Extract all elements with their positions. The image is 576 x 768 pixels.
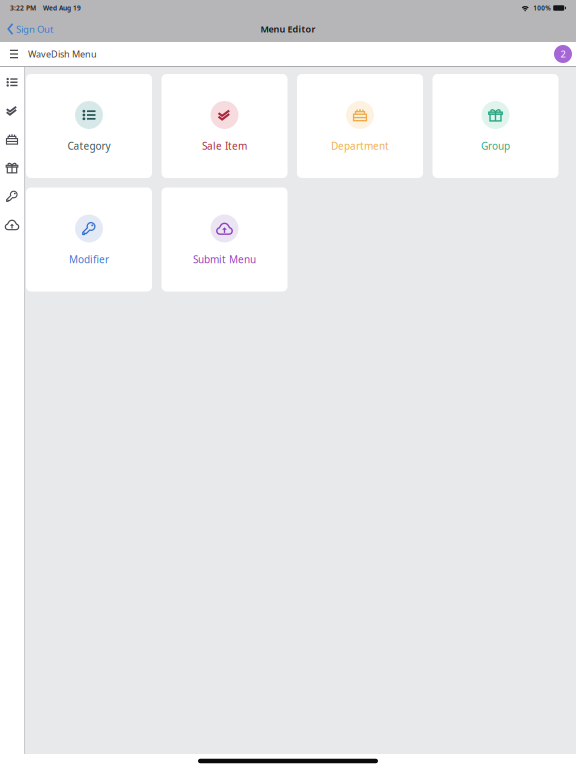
button[interactable]: Modifiers xyxy=(0,182,24,210)
button[interactable]: Sign Out xyxy=(0,16,59,42)
button[interactable]: Menu xyxy=(6,45,22,63)
staticText: Wed Aug 19 xyxy=(43,4,81,12)
staticText: Menu Editor xyxy=(260,23,315,35)
button[interactable]: Category xyxy=(26,74,152,178)
staticText: 2 xyxy=(560,48,565,60)
button[interactable]: Groups xyxy=(0,153,24,182)
button[interactable]: Items list xyxy=(0,68,24,96)
button[interactable]: Sale Item xyxy=(161,74,287,178)
staticText: 3:22 PM xyxy=(10,3,36,13)
button[interactable]: Group xyxy=(432,74,558,178)
staticText: Category xyxy=(67,139,110,153)
staticText: Sign Out xyxy=(16,22,53,36)
staticText: 100% xyxy=(533,4,550,12)
staticText: Group xyxy=(481,139,510,153)
button[interactable]: Submit menu xyxy=(0,210,24,239)
staticText: WaveDish Menu xyxy=(28,48,97,60)
staticText: Submit Menu xyxy=(193,252,256,266)
button[interactable]: Department xyxy=(297,74,423,178)
button[interactable]: Notifications xyxy=(553,44,573,64)
staticText: Modifier xyxy=(69,252,109,266)
button[interactable]: Submit Menu xyxy=(161,187,287,291)
button[interactable]: Approvals xyxy=(0,96,24,125)
button[interactable]: Departments xyxy=(0,125,24,153)
staticText: Department xyxy=(331,139,389,153)
button[interactable]: Modifier xyxy=(26,187,152,291)
staticText: Sale Item xyxy=(202,139,247,153)
